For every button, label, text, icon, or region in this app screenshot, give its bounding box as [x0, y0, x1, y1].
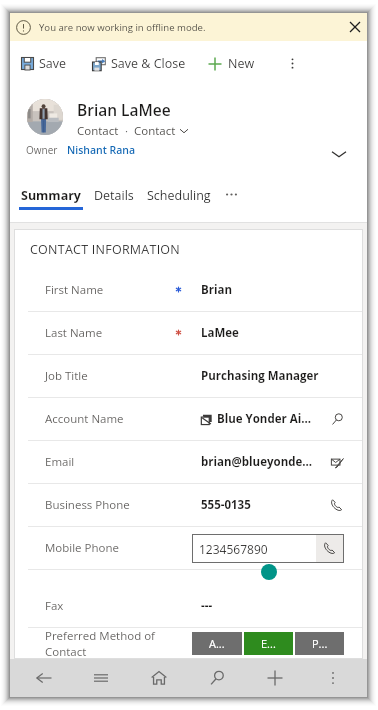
- staticText: A...: [209, 636, 225, 651]
- button[interactable]: Save & Close: [85, 49, 193, 78]
- button[interactable]: Search: [326, 408, 348, 430]
- button[interactable]: Add: [246, 659, 304, 697]
- button[interactable]: More tabs: [217, 178, 245, 210]
- button[interactable]: Call: [326, 494, 348, 516]
- staticText: Preferred Method of Contact: [45, 628, 155, 659]
- button[interactable]: Home: [130, 659, 188, 697]
- staticText: Save & Close: [111, 55, 186, 72]
- staticText: Scheduling: [147, 187, 211, 204]
- button[interactable]: Dismiss message: [344, 16, 366, 38]
- button[interactable]: Account Name: [14, 398, 363, 441]
- button[interactable]: Details: [92, 178, 136, 210]
- button[interactable]: Save: [14, 49, 74, 78]
- button[interactable]: First Name: [14, 269, 363, 312]
- staticText: New: [228, 55, 255, 72]
- button[interactable]: More options: [304, 659, 362, 697]
- staticText: First Name: [45, 282, 174, 298]
- staticText: Business Phone: [45, 497, 174, 513]
- staticText: Mobile Phone: [45, 540, 174, 556]
- button[interactable]: Nishant Rana: [67, 139, 136, 157]
- button[interactable]: Summary: [19, 178, 83, 210]
- staticText: Contact: [77, 123, 119, 139]
- staticText: LaMee: [201, 325, 348, 341]
- button[interactable]: Job Title: [14, 355, 363, 398]
- staticText: Brian: [201, 282, 348, 298]
- staticText: 1234567890: [199, 541, 268, 557]
- staticText: Fax: [45, 598, 174, 614]
- staticText: Owner: [26, 143, 58, 157]
- staticText: Account Name: [45, 411, 174, 427]
- button[interactable]: A...: [192, 632, 242, 655]
- button[interactable]: Email: [326, 451, 348, 473]
- staticText: Details: [94, 187, 134, 204]
- button[interactable]: Fax: [14, 585, 363, 628]
- staticText: Job Title: [45, 368, 174, 384]
- staticText: You are now working in offline mode.: [39, 21, 206, 34]
- staticText: Brian LaMee: [77, 99, 171, 120]
- button[interactable]: Back: [15, 659, 72, 697]
- button[interactable]: Call mobile: [316, 534, 344, 563]
- staticText: Email: [45, 454, 174, 470]
- staticText: Purchasing Manager: [201, 368, 348, 384]
- staticText: brian@blueyonde...: [201, 454, 326, 470]
- staticText: E...: [261, 636, 276, 651]
- button[interactable]: New: [201, 49, 262, 78]
- staticText: Blue Yonder Ai...: [217, 411, 326, 427]
- staticText: Summary: [21, 187, 81, 204]
- button[interactable]: Search: [188, 659, 246, 697]
- button[interactable]: 1234567890: [192, 534, 344, 563]
- button[interactable]: Menu: [72, 659, 130, 697]
- button[interactable]: Email: [14, 441, 363, 484]
- button[interactable]: More commands: [278, 49, 306, 77]
- staticText: Save: [39, 55, 67, 72]
- staticText: 555-0135: [201, 497, 326, 513]
- button[interactable]: Scheduling: [145, 178, 213, 210]
- button[interactable]: Last Name: [14, 312, 363, 355]
- staticText: P...: [312, 636, 328, 651]
- button[interactable]: E...: [244, 632, 293, 655]
- staticText: ---: [201, 598, 348, 614]
- staticText: Last Name: [45, 325, 174, 341]
- button[interactable]: Contact: [134, 123, 176, 139]
- button[interactable]: Business Phone: [14, 484, 363, 527]
- staticText: CONTACT INFORMATION: [30, 241, 181, 258]
- button[interactable]: Expand header: [324, 139, 354, 169]
- staticText: ·: [119, 123, 134, 139]
- button[interactable]: P...: [295, 632, 344, 655]
